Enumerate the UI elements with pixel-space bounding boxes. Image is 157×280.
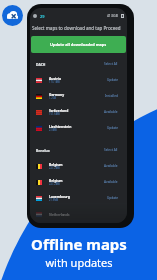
staticText: DACH — [36, 62, 46, 67]
staticText: 2.0MB — [49, 128, 57, 132]
button[interactable]: Liechtenstein — [36, 120, 118, 136]
staticText: 151.6MB — [49, 112, 60, 116]
staticText: Belgium — [49, 162, 63, 166]
staticText: Available — [104, 164, 118, 168]
button[interactable]: Update all downloaded maps — [31, 36, 126, 53]
button[interactable]: Belgium — [36, 158, 118, 174]
staticText: Germany — [49, 92, 65, 96]
staticText: Update all downloaded maps — [50, 42, 107, 47]
button[interactable]: Netherlands — [36, 206, 118, 222]
staticText: 227.2MB — [49, 166, 60, 170]
staticText: Offline maps — [31, 234, 127, 254]
staticText: Luxembourg — [49, 194, 70, 198]
staticText: Available — [104, 180, 118, 184]
staticText: 29 — [40, 14, 45, 19]
staticText: Belgium — [49, 178, 63, 182]
staticText: 227.2MB — [49, 182, 60, 186]
button[interactable]: Luxembourg — [36, 190, 118, 206]
staticText: Update — [107, 78, 118, 82]
staticText: 173.1MB — [49, 80, 60, 84]
button[interactable]: Germany — [36, 88, 118, 104]
button[interactable]: Offline maps — [2, 5, 23, 26]
staticText: 41.5GB — [107, 14, 118, 18]
staticText: Austria — [49, 76, 61, 80]
staticText: Installed — [105, 94, 118, 98]
button[interactable]: Belgium — [36, 174, 118, 190]
staticText: Netherlands — [49, 212, 70, 216]
staticText: Select All — [104, 148, 118, 152]
staticText: Update — [107, 196, 118, 200]
staticText: Benelux — [36, 148, 50, 153]
staticText: with updates — [45, 255, 113, 270]
staticText: Select maps to download and tap Proceed — [32, 25, 121, 31]
staticText: Switzerland — [49, 108, 69, 112]
staticText: 1.2GB — [49, 96, 57, 100]
staticText: Liechtenstein — [49, 124, 72, 128]
button[interactable]: Austria — [36, 72, 118, 88]
staticText: Available — [104, 110, 118, 114]
button[interactable]: Select All — [104, 62, 118, 66]
staticText: 21.9MB — [49, 198, 59, 202]
staticText: Update — [107, 126, 118, 130]
button[interactable]: Switzerland — [36, 104, 118, 120]
button[interactable]: Select All — [104, 148, 118, 152]
staticText: Select All — [104, 62, 118, 66]
